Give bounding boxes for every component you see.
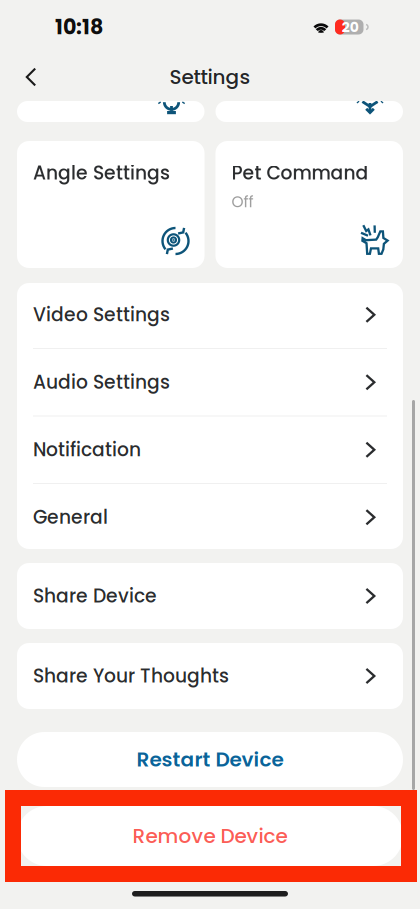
staticText: 10:18 bbox=[55, 12, 103, 41]
button[interactable]: Angle Settings bbox=[17, 141, 204, 268]
button[interactable]: General bbox=[17, 484, 403, 550]
button[interactable]: Audio Settings bbox=[17, 349, 403, 415]
staticText: Audio Settings bbox=[33, 369, 170, 395]
staticText: Off bbox=[231, 191, 253, 213]
staticText: Remove Device bbox=[132, 822, 287, 850]
staticText: Share Your Thoughts bbox=[33, 663, 229, 689]
button[interactable]: Back bbox=[8, 54, 54, 100]
button[interactable]: Remove Device bbox=[17, 806, 403, 866]
button[interactable]: Restart Device bbox=[17, 732, 403, 787]
staticText: 20 bbox=[342, 17, 359, 37]
button[interactable]: Share Your Thoughts bbox=[17, 643, 403, 709]
staticText: Video Settings bbox=[33, 302, 170, 328]
button[interactable]: Pet Command bbox=[215, 141, 403, 268]
staticText: Notification bbox=[33, 437, 141, 463]
staticText: Settings bbox=[169, 63, 250, 91]
button[interactable]: Share Device bbox=[17, 563, 403, 629]
staticText: Share Device bbox=[33, 583, 157, 609]
staticText: General bbox=[33, 504, 108, 530]
button[interactable]: Notification bbox=[17, 416, 403, 483]
staticText: Restart Device bbox=[136, 745, 283, 773]
button[interactable]: Video Settings bbox=[17, 281, 403, 348]
staticText: Angle Settings bbox=[33, 160, 170, 186]
staticText: Pet Command bbox=[231, 160, 368, 186]
